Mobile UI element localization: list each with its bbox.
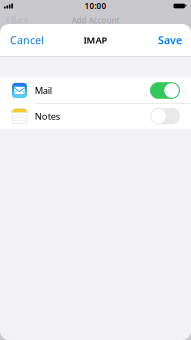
staticText: 10:00 [84,1,106,11]
staticText: Add Account [71,15,119,26]
button[interactable]: Cancel [6,27,48,53]
staticText: Notes [35,110,60,122]
staticText: Mail [35,84,52,97]
button[interactable]: Mail [0,78,191,103]
staticText: Save [158,33,182,47]
button[interactable]: Notes [0,104,191,129]
staticText: Cancel [10,33,44,47]
staticText: IMAP [83,34,107,46]
staticText: Back [11,15,28,26]
button[interactable]: Save [154,27,186,53]
